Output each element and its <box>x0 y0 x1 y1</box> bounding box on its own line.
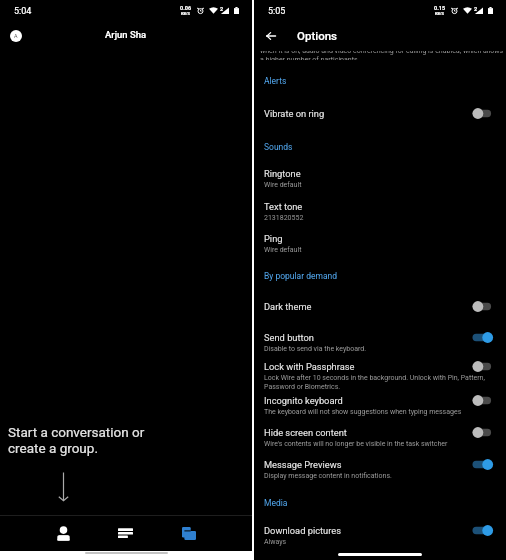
staticText: 2 <box>220 6 224 12</box>
staticText: By popular demand <box>264 271 338 281</box>
button[interactable]: Text tone <box>254 201 506 222</box>
staticText: Start a conversation or create a group. <box>8 424 145 456</box>
button[interactable]: Message Previews <box>254 459 506 480</box>
button[interactable]: Dark theme <box>254 301 506 314</box>
staticText: Vibrate on ring <box>264 108 325 119</box>
button[interactable]: Send button <box>254 332 506 353</box>
staticText: 2131820552 <box>264 214 304 222</box>
staticText: Download pictures <box>264 525 341 536</box>
staticText: 0.06 <box>180 5 192 11</box>
staticText: when it is on, audio and video conferenc… <box>260 51 504 60</box>
staticText: Display message content in notifications… <box>264 472 392 480</box>
staticText: Send button <box>264 332 314 343</box>
staticText: A <box>14 33 18 39</box>
staticText: Disable to send via the keyboard. <box>264 345 367 353</box>
button[interactable]: Contacts <box>32 516 94 551</box>
staticText: 5:05 <box>268 6 286 17</box>
staticText: Ping <box>264 233 283 244</box>
button[interactable]: Lock with Passphrase <box>254 361 506 391</box>
staticText: 5:04 <box>14 6 32 17</box>
staticText: Dark theme <box>264 301 312 312</box>
staticText: Media <box>264 498 288 508</box>
button[interactable]: Conversations <box>94 516 157 551</box>
staticText: Lock Wire after 10 seconds in the backgr… <box>264 374 485 391</box>
staticText: Hide screen content <box>264 427 347 438</box>
button[interactable]: Vibrate on ring <box>254 108 506 121</box>
button[interactable]: Ping <box>254 233 506 254</box>
staticText: Always <box>264 538 287 546</box>
staticText: Arjun Sha <box>105 29 147 40</box>
button[interactable]: Incognito keyboard <box>254 395 506 416</box>
button[interactable]: Back <box>265 30 276 41</box>
staticText: Text tone <box>264 201 303 212</box>
staticText: The keyboard will not show suggestions w… <box>264 408 462 416</box>
staticText: 2 <box>474 6 478 12</box>
staticText: Wire's contents will no longer be visibl… <box>264 440 448 448</box>
staticText: Message Previews <box>264 459 342 470</box>
staticText: Incognito keyboard <box>264 395 343 406</box>
staticText: Wire default <box>264 246 302 254</box>
button[interactable]: Hide screen content <box>254 427 506 448</box>
staticText: Ringtone <box>264 168 301 179</box>
staticText: Alerts <box>264 76 287 86</box>
staticText: Options <box>297 29 337 42</box>
staticText: Lock with Passphrase <box>264 361 355 372</box>
button[interactable]: Profile <box>10 30 22 42</box>
staticText: Wire default <box>264 181 302 189</box>
button[interactable]: Ringtone <box>254 168 506 189</box>
button[interactable]: Download pictures <box>254 525 506 546</box>
staticText: 0.15 <box>434 5 446 11</box>
staticText: KB/S <box>435 11 445 16</box>
button[interactable]: Folders <box>157 516 220 551</box>
staticText: Sounds <box>264 142 293 152</box>
staticText: KB/S <box>181 11 191 16</box>
